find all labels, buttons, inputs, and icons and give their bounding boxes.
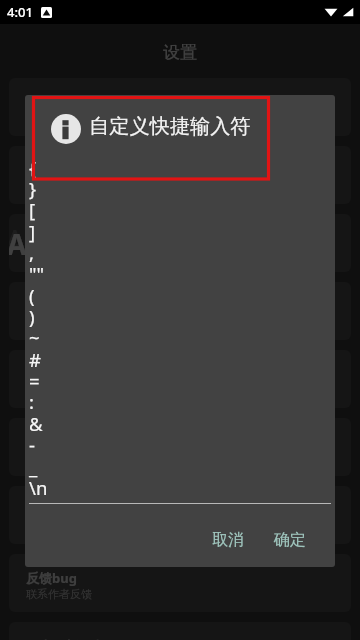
- staticText: "": [29, 261, 45, 286]
- staticText: ): [29, 304, 35, 329]
- staticText: {: [29, 155, 37, 180]
- staticText: 确定: [274, 530, 306, 550]
- staticText: 联系作者反馈: [26, 587, 92, 601]
- button[interactable]: 关于软件: [9, 486, 351, 544]
- staticText: 字体设置: [26, 230, 78, 246]
- staticText: 关于软件: [26, 502, 78, 518]
- staticText: ~: [29, 325, 40, 350]
- staticText: ]: [29, 219, 36, 244]
- staticText: \n: [29, 475, 48, 500]
- staticText: (: [29, 283, 35, 308]
- staticText: 代码高亮主题: [26, 298, 104, 314]
- staticText: &: [29, 411, 43, 436]
- staticText: 编辑器设置: [26, 162, 91, 178]
- staticText: :: [29, 389, 34, 414]
- staticText: 设置: [163, 42, 197, 63]
- button[interactable]: 取消: [201, 522, 255, 558]
- staticText: =: [29, 368, 40, 393]
- button[interactable]: A: [9, 214, 351, 272]
- staticText: 跟随系统: [26, 110, 70, 124]
- staticText: 自定义快捷输入符: [26, 366, 130, 382]
- staticText: 自动保存: [26, 434, 78, 450]
- staticText: }: [29, 176, 37, 201]
- button[interactable]: 自动保存: [9, 418, 351, 476]
- staticText: [: [29, 197, 36, 222]
- staticText: 自定义快捷输入符: [89, 114, 251, 139]
- staticText: 修改字体大小: [26, 246, 92, 260]
- staticText: 取消: [212, 530, 244, 550]
- staticText: ,: [29, 240, 34, 265]
- staticText: 光标、缩进: [26, 178, 81, 192]
- button[interactable]: 编辑器设置: [9, 146, 351, 204]
- staticText: 夜间模式: [26, 94, 78, 110]
- staticText: 选择主题: [26, 314, 70, 328]
- staticText: 反馈bug: [26, 569, 77, 587]
- button[interactable]: 夜间模式: [9, 78, 351, 136]
- button[interactable]: 自定义快捷输入符: [9, 350, 351, 408]
- staticText: A: [9, 225, 27, 263]
- staticText: _: [29, 454, 38, 479]
- button[interactable]: 代码高亮主题: [9, 282, 351, 340]
- button[interactable]: 反馈bug: [9, 554, 351, 612]
- staticText: -: [29, 432, 35, 457]
- button[interactable]: 确定: [263, 522, 317, 558]
- staticText: A: [9, 219, 26, 265]
- staticText: 4:01: [7, 3, 33, 21]
- staticText: #: [29, 347, 41, 372]
- staticText: 编辑输入符: [26, 382, 81, 396]
